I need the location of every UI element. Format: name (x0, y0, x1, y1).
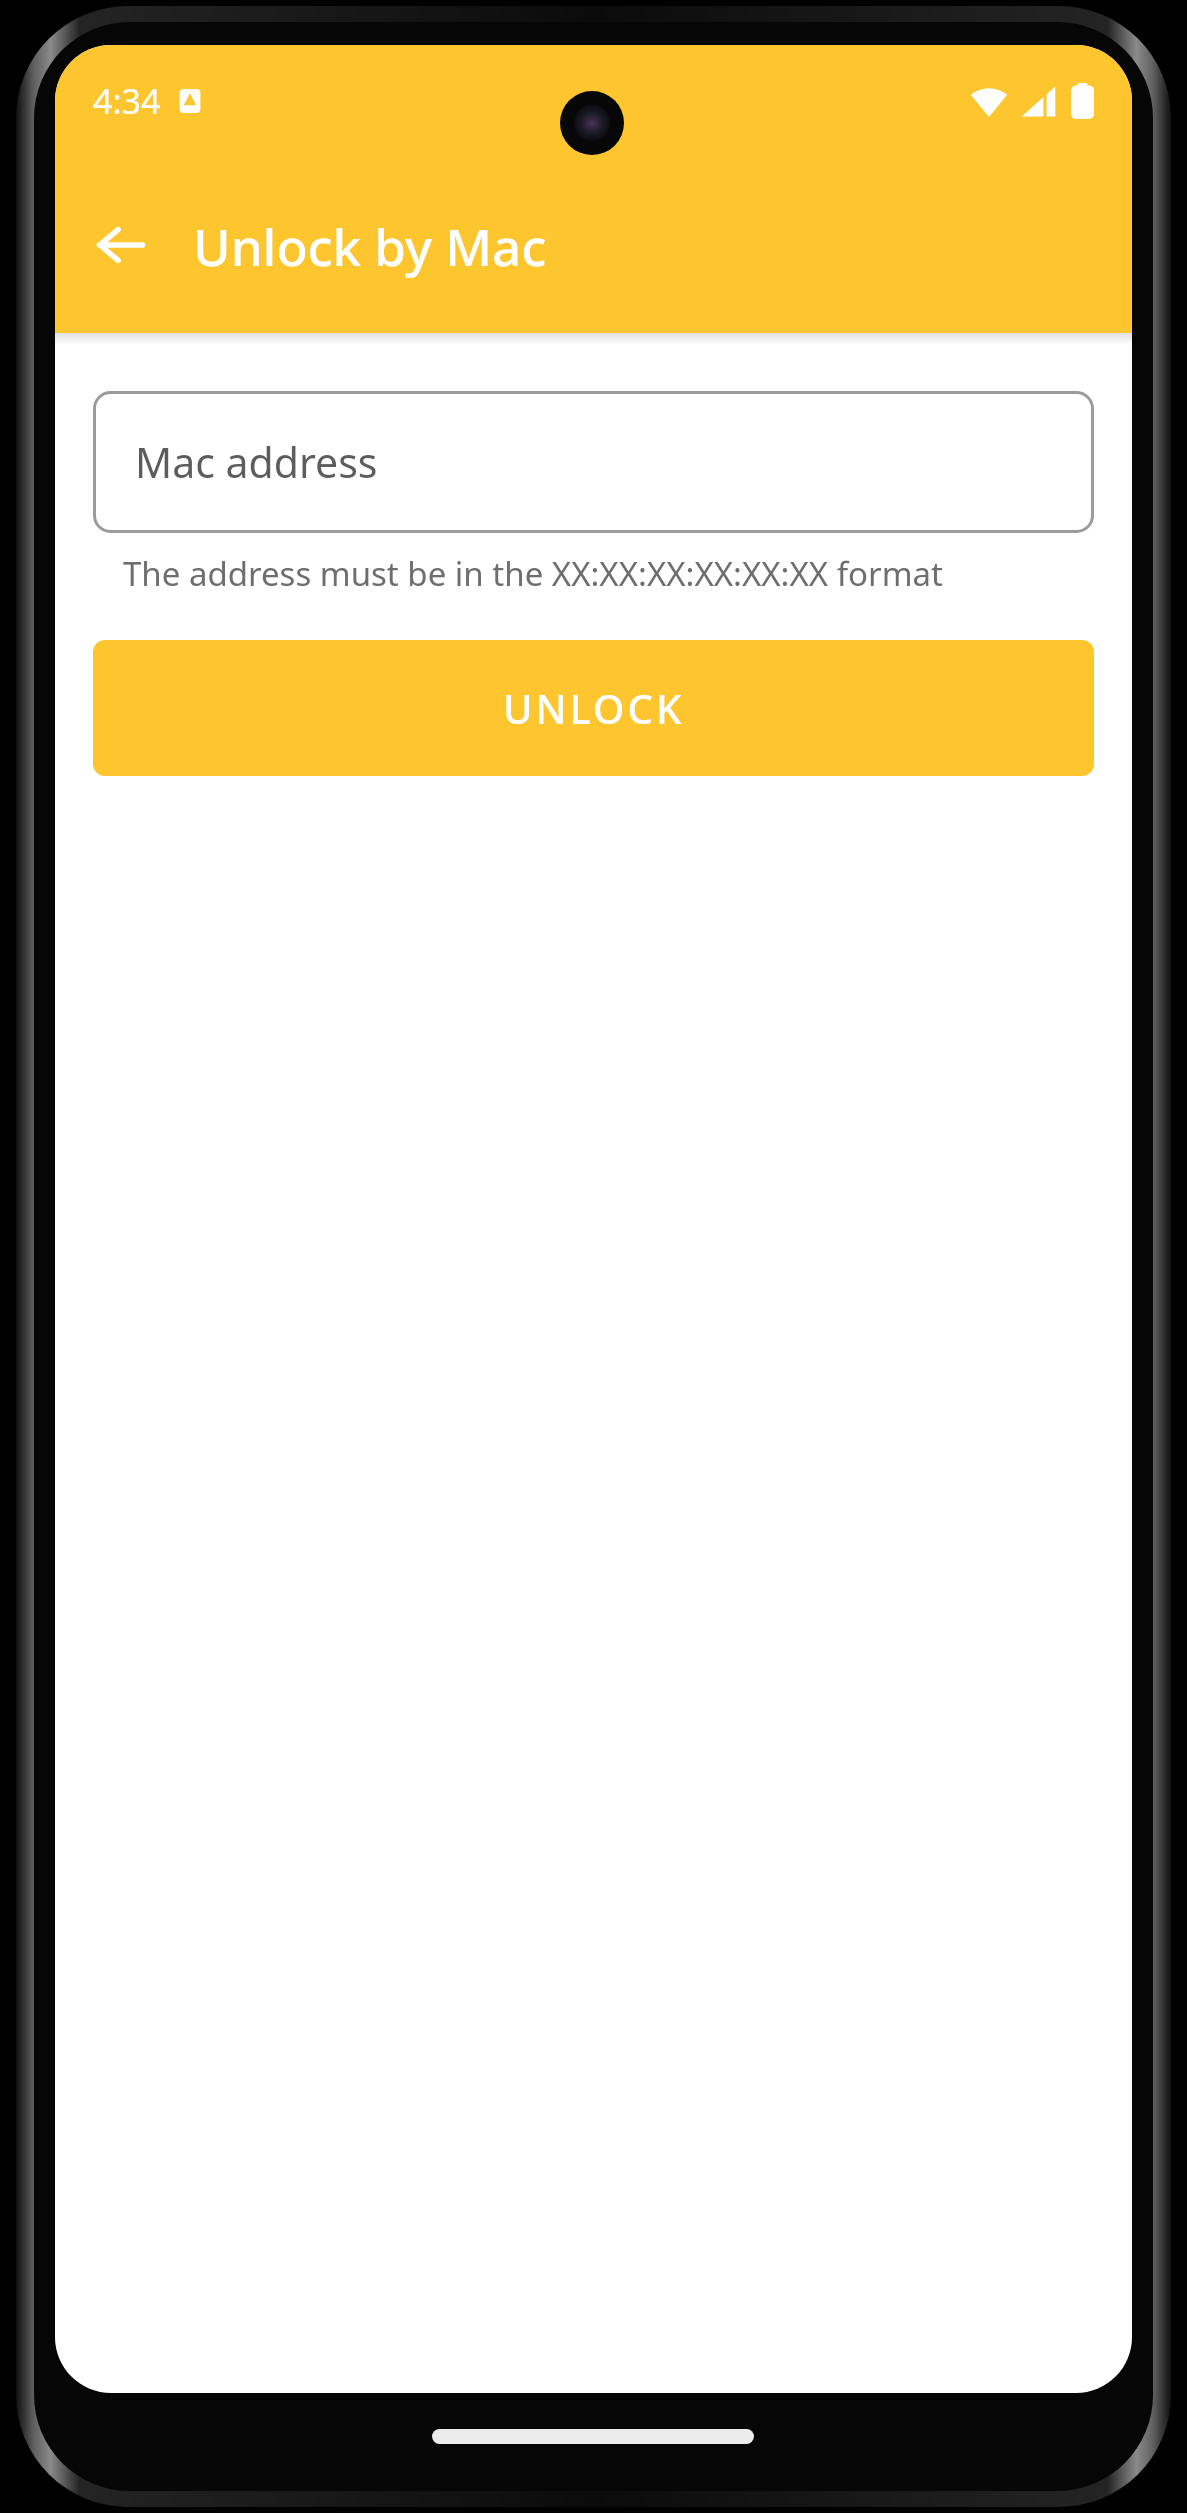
staticText: Unlock by Mac (193, 211, 547, 280)
button[interactable]: Mac address (93, 391, 1094, 533)
button[interactable]: UNLOCK (93, 640, 1094, 776)
button[interactable]: Back (75, 199, 167, 291)
staticText: UNLOCK (503, 681, 685, 735)
staticText: 4:34 (93, 78, 161, 124)
staticText: The address must be in the XX:XX:XX:XX:X… (123, 551, 943, 596)
staticText: Mac address (135, 434, 378, 490)
